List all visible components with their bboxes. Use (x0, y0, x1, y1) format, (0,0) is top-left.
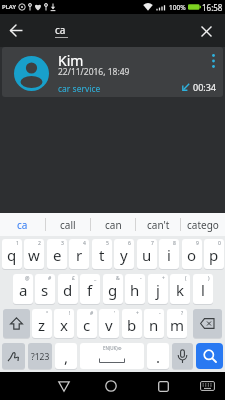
button[interactable]: ca (0, 213, 45, 236)
staticText: ? (181, 310, 184, 317)
staticText: t (99, 245, 105, 265)
staticText: ) (208, 275, 210, 282)
staticText: _ (94, 275, 97, 282)
staticText: 2 (38, 240, 41, 247)
button[interactable] (203, 51, 223, 71)
button[interactable]: can (91, 213, 135, 236)
button[interactable]: . (147, 343, 169, 369)
staticText: ?123 (31, 351, 50, 363)
staticText: n (149, 315, 159, 335)
staticText: £ (72, 275, 75, 282)
button[interactable]: k (170, 274, 190, 304)
button[interactable]: a (13, 274, 33, 304)
staticText: 8 (173, 240, 176, 247)
button[interactable]: r (69, 239, 89, 269)
button[interactable]: o (182, 239, 202, 269)
button[interactable] (193, 309, 222, 338)
staticText: 9 (196, 240, 199, 247)
button[interactable]: catego (181, 213, 225, 236)
staticText: ° (46, 310, 49, 317)
staticText: # (90, 310, 94, 317)
staticText: - (140, 275, 142, 282)
staticText: - (159, 310, 161, 317)
staticText: 3 (61, 240, 64, 247)
button[interactable] (193, 18, 219, 44)
button[interactable] (0, 14, 33, 47)
staticText: h (130, 280, 140, 300)
staticText: g (108, 280, 118, 300)
button[interactable]: x (54, 309, 74, 338)
staticText: , (64, 347, 69, 367)
staticText: ( (185, 275, 187, 282)
button[interactable] (97, 372, 125, 400)
button[interactable] (195, 374, 219, 398)
staticText: ' (114, 310, 116, 317)
staticText: u (142, 245, 152, 265)
staticText: EN(UK)⚙ (103, 345, 122, 351)
staticText: j (156, 280, 160, 300)
staticText: k (176, 280, 185, 300)
button[interactable]: n (144, 309, 164, 338)
staticText: 100% (169, 3, 186, 12)
button[interactable]: EN(UK)⚙ (80, 343, 144, 369)
button[interactable]: can't (136, 213, 180, 236)
staticText: ca (55, 23, 66, 37)
staticText: ! (69, 310, 71, 317)
button[interactable]: e (47, 239, 67, 269)
button[interactable]: i (159, 239, 179, 269)
staticText: d (63, 280, 73, 300)
staticText: 1 (16, 240, 19, 247)
button[interactable]: c (77, 309, 97, 338)
staticText: 5 (106, 240, 109, 247)
staticText: car service (58, 83, 101, 95)
staticText: catego (187, 218, 219, 232)
staticText: x (60, 315, 68, 335)
staticText: y (120, 245, 128, 265)
staticText: PLAY (2, 3, 16, 11)
button[interactable]: f (80, 274, 100, 304)
button[interactable] (50, 372, 78, 400)
button[interactable] (3, 309, 30, 338)
button[interactable]: Kim (2, 47, 223, 97)
staticText: 0 (218, 240, 221, 247)
button[interactable]: ?123 (28, 343, 52, 369)
button[interactable]: j (148, 274, 168, 304)
button[interactable]: l (193, 274, 213, 304)
staticText: o (187, 245, 197, 265)
button[interactable]: w (24, 239, 44, 269)
button[interactable]: b (122, 309, 142, 338)
staticText: . (156, 347, 161, 367)
staticText: e (53, 245, 62, 265)
button[interactable]: v (99, 309, 119, 338)
staticText: s (41, 280, 49, 300)
staticText: 7 (151, 240, 154, 247)
button[interactable]: , (55, 343, 77, 369)
staticText: # (48, 275, 52, 282)
staticText: z (38, 315, 46, 335)
button[interactable]: d (58, 274, 78, 304)
button[interactable]: call (46, 213, 90, 236)
button[interactable] (2, 343, 25, 369)
button[interactable]: h (125, 274, 145, 304)
button[interactable]: t (92, 239, 112, 269)
staticText: & (116, 275, 120, 282)
button[interactable] (172, 343, 193, 369)
button[interactable]: y (114, 239, 134, 269)
staticText: 6 (128, 240, 131, 247)
button[interactable]: g (103, 274, 123, 304)
button[interactable]: z (32, 309, 52, 338)
button[interactable]: m (167, 309, 187, 338)
button[interactable]: q (2, 239, 22, 269)
staticText: @ (25, 275, 30, 282)
button[interactable] (149, 372, 177, 400)
staticText: p (209, 245, 219, 265)
button[interactable]: s (35, 274, 55, 304)
staticText: Kim (58, 51, 84, 70)
button[interactable]: u (137, 239, 157, 269)
staticText: q (7, 245, 17, 265)
staticText: a (19, 280, 28, 300)
staticText: can (105, 218, 122, 232)
staticText: + (136, 310, 139, 317)
button[interactable]: p (204, 239, 224, 269)
button[interactable] (196, 343, 223, 369)
